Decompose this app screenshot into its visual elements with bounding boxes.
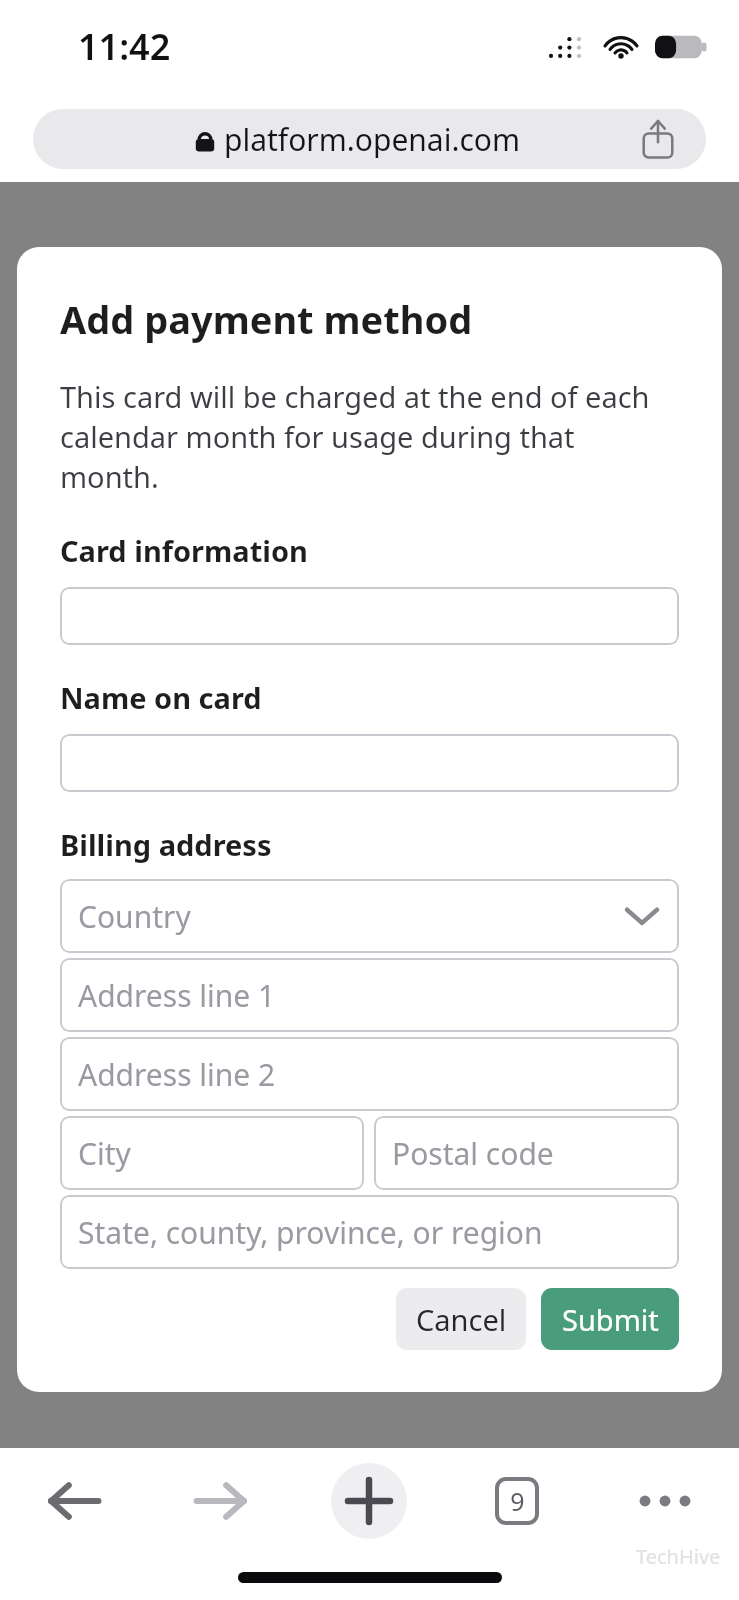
staticText: platform.openai.com: [224, 119, 521, 160]
button[interactable]: Postal code: [374, 1116, 679, 1190]
staticText: Submit: [562, 1300, 659, 1339]
staticText: TechHive: [636, 1543, 721, 1570]
staticText: Postal code: [392, 1133, 554, 1174]
staticText: City: [78, 1133, 131, 1174]
staticText: Country: [78, 896, 191, 937]
button[interactable]: More options: [591, 1448, 739, 1553]
button[interactable]: State, county, province, or region: [60, 1195, 679, 1269]
button[interactable]: Address line 2: [60, 1037, 679, 1111]
staticText: Address line 2: [78, 1054, 276, 1095]
staticText: This card will be charged at the end of …: [60, 377, 679, 497]
button[interactable]: New tab: [295, 1448, 443, 1553]
button[interactable]: Submit: [541, 1288, 679, 1350]
button[interactable]: Forward: [147, 1448, 295, 1553]
staticText: Billing address: [60, 825, 272, 864]
button[interactable]: [60, 587, 679, 645]
staticText: Name on card: [60, 678, 262, 717]
button[interactable]: Share: [636, 117, 680, 161]
button[interactable]: Cancel: [396, 1288, 526, 1350]
button[interactable]: Address line 1: [60, 958, 679, 1032]
staticText: Card information: [60, 531, 308, 570]
button[interactable]: platform.openai.com: [33, 109, 706, 169]
button[interactable]: [60, 734, 679, 792]
staticText: 11:42: [78, 22, 171, 71]
button[interactable]: Country: [60, 879, 679, 953]
button[interactable]: Tabs: [443, 1448, 591, 1553]
staticText: Cancel: [416, 1300, 507, 1339]
staticText: 9: [510, 1484, 525, 1518]
staticText: State, county, province, or region: [78, 1212, 543, 1253]
staticText: Address line 1: [78, 975, 276, 1016]
button[interactable]: Back: [0, 1448, 147, 1553]
staticText: Add payment method: [60, 293, 473, 345]
button[interactable]: City: [60, 1116, 364, 1190]
